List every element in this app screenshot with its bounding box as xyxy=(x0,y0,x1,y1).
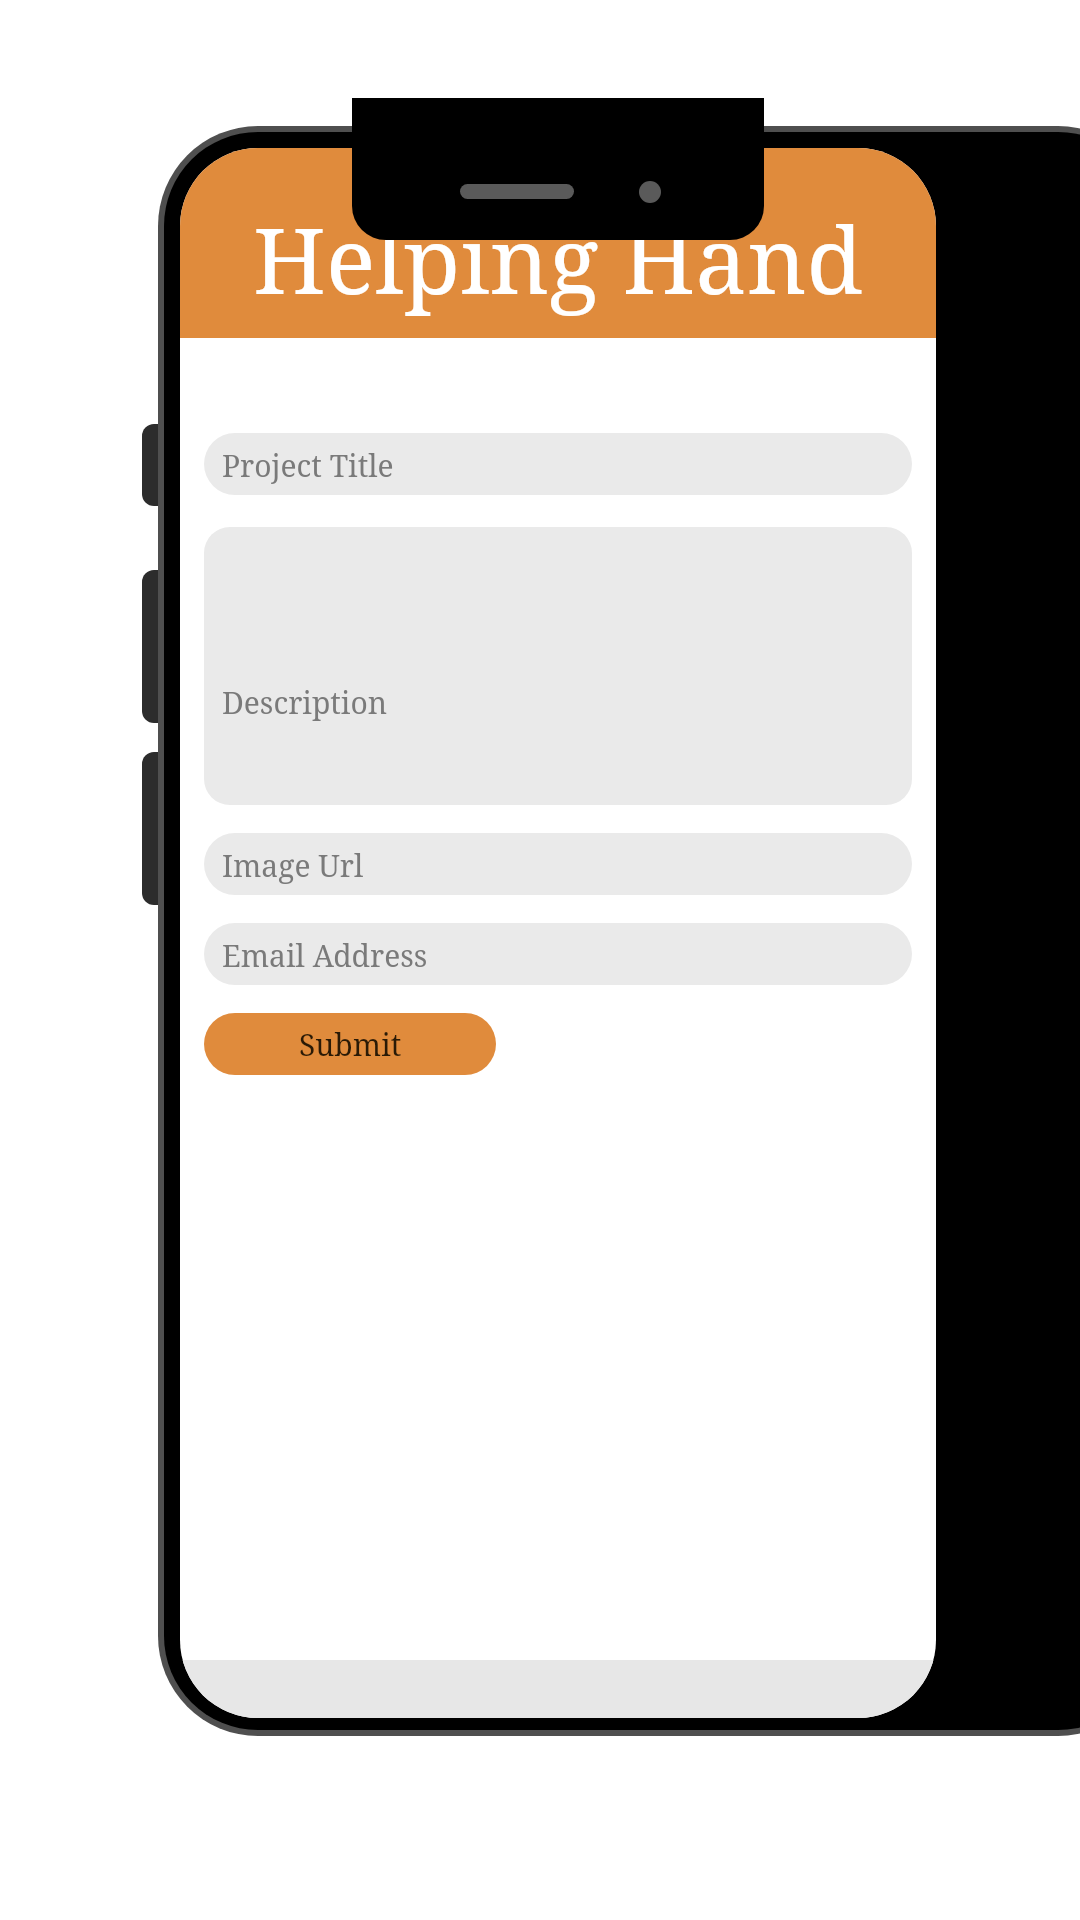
button[interactable]: Submit xyxy=(204,1013,496,1075)
staticText: Helping Hand xyxy=(180,196,936,321)
button[interactable]: Project Title xyxy=(204,433,912,495)
staticText: Project Title xyxy=(222,445,394,486)
button[interactable]: Image Url xyxy=(204,833,912,895)
button[interactable]: Email Address xyxy=(204,923,912,985)
button[interactable]: Description xyxy=(204,527,912,805)
staticText: Submit xyxy=(299,1024,402,1065)
staticText: Email Address xyxy=(222,935,428,976)
staticText: Description xyxy=(222,682,388,723)
staticText: Image Url xyxy=(222,845,364,886)
